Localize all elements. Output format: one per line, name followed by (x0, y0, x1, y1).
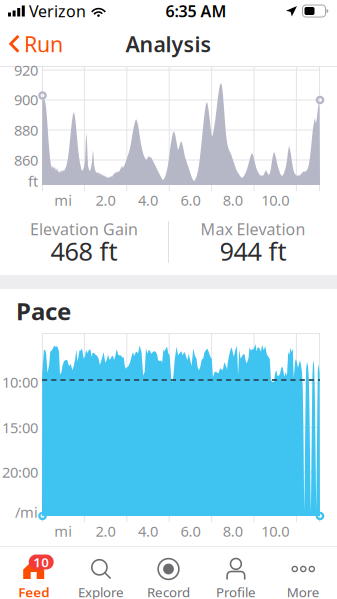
staticText: 8.0 (223, 190, 243, 210)
staticText: 15:00 (2, 418, 38, 437)
staticText: Pace (16, 295, 71, 327)
staticText: 944 ft (219, 234, 286, 268)
staticText: Elevation Gain (30, 218, 138, 240)
staticText: 468 ft (50, 234, 117, 268)
staticText: Verizon (29, 0, 86, 22)
staticText: Run (24, 30, 63, 58)
button[interactable]: Record (135, 546, 202, 598)
staticText: /mi (15, 502, 38, 522)
staticText: 6:35 AM (165, 0, 226, 22)
staticText: 2.0 (96, 190, 116, 210)
staticText: Record (147, 583, 190, 599)
staticText: mi (54, 521, 72, 541)
button[interactable]: More (270, 546, 337, 598)
staticText: 10.0 (261, 190, 289, 210)
button[interactable]: Run (0, 22, 73, 66)
staticText: 10:00 (2, 372, 38, 392)
staticText: 8.0 (223, 521, 243, 541)
staticText: 10 (33, 553, 49, 571)
staticText: 20:00 (2, 462, 38, 482)
staticText: 4.0 (138, 521, 158, 541)
staticText: 880 (14, 120, 38, 140)
button[interactable]: Explore (67, 546, 135, 598)
button[interactable]: 10 (0, 546, 67, 598)
staticText: Max Elevation (200, 218, 305, 240)
staticText: mi (54, 190, 72, 210)
staticText: 6.0 (180, 521, 200, 541)
staticText: More (287, 583, 320, 599)
button[interactable]: Profile (202, 546, 270, 598)
staticText: Feed (18, 583, 49, 599)
staticText: Profile (216, 583, 256, 599)
staticText: ft (28, 171, 38, 191)
staticText: 10.0 (261, 521, 289, 541)
staticText: 4.0 (138, 190, 158, 210)
staticText: 2.0 (96, 521, 116, 541)
staticText: 6.0 (180, 190, 200, 210)
staticText: Analysis (125, 30, 211, 58)
staticText: 860 (14, 150, 38, 170)
staticText: Explore (78, 583, 124, 599)
staticText: 900 (14, 90, 38, 109)
staticText: 920 (14, 60, 38, 80)
